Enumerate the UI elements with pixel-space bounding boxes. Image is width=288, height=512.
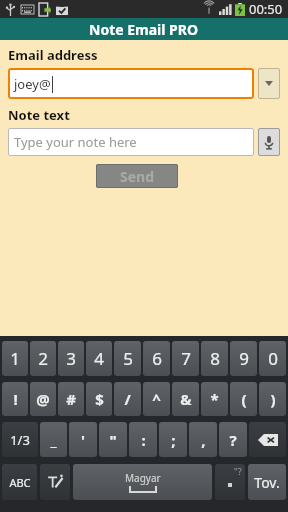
staticText: Send	[120, 167, 155, 186]
staticText: 9	[239, 347, 249, 370]
button[interactable]: !	[2, 382, 28, 416]
staticText: *	[210, 389, 219, 409]
staticText: !	[13, 389, 18, 409]
button[interactable]: 6	[143, 341, 170, 376]
button[interactable]: (	[230, 382, 257, 416]
staticText: 0	[268, 347, 278, 370]
button[interactable]: ?	[219, 422, 247, 457]
staticText: joey@	[14, 75, 51, 93]
staticText: 8	[210, 347, 220, 370]
staticText: ,	[201, 430, 206, 450]
staticText: Tov.	[254, 473, 280, 492]
button[interactable]: Type your note here	[8, 128, 254, 156]
staticText: Note text	[8, 106, 70, 124]
staticText: "	[109, 430, 117, 450]
button[interactable]: #	[58, 382, 84, 416]
staticText: /	[124, 389, 131, 409]
button[interactable]: ^	[143, 382, 170, 416]
button[interactable]: Tov.	[248, 464, 286, 500]
staticText: Note Email PRO	[89, 20, 199, 39]
button[interactable]: 8	[201, 341, 228, 376]
button[interactable]: ,	[189, 422, 217, 457]
staticText: "?	[234, 465, 242, 477]
button[interactable]: "	[99, 422, 127, 457]
button[interactable]: Show suggestions	[258, 68, 280, 99]
button[interactable]: 3	[58, 341, 84, 376]
button[interactable]: ABC	[2, 464, 37, 500]
button[interactable]: Punctuation	[215, 464, 245, 500]
staticText: _	[50, 430, 57, 450]
staticText: Type your note here	[14, 133, 137, 151]
button[interactable]: )	[259, 382, 286, 416]
button[interactable]: Handwriting input	[40, 464, 70, 500]
staticText: &	[180, 389, 192, 409]
staticText: 3	[66, 347, 76, 370]
staticText: 1	[10, 347, 20, 370]
button[interactable]: 2	[30, 341, 56, 376]
staticText: 6	[152, 347, 162, 370]
staticText: 1/3	[10, 431, 30, 449]
button[interactable]: 1	[2, 341, 28, 376]
button[interactable]: @	[30, 382, 56, 416]
button[interactable]: Space	[73, 464, 212, 500]
button[interactable]: 4	[86, 341, 112, 376]
staticText: @	[36, 389, 50, 409]
staticText: $	[95, 389, 104, 409]
staticText: ?	[229, 430, 237, 450]
button[interactable]: 7	[172, 341, 199, 376]
button[interactable]: &	[172, 382, 199, 416]
staticText: 00:50	[249, 0, 283, 18]
staticText: )	[270, 389, 276, 409]
button[interactable]: Backspace	[249, 422, 286, 457]
staticText: #	[66, 389, 76, 409]
staticText: '	[81, 430, 85, 450]
button[interactable]: _	[40, 422, 67, 457]
button[interactable]: 9	[230, 341, 257, 376]
staticText: ABC	[9, 475, 31, 490]
button[interactable]: Voice input	[258, 128, 280, 156]
button[interactable]: 1/3	[2, 422, 38, 457]
button[interactable]: 5	[114, 341, 141, 376]
button[interactable]: :	[129, 422, 157, 457]
staticText: 7	[181, 347, 191, 370]
staticText: Magyar	[125, 471, 161, 485]
staticText: 4	[94, 347, 104, 370]
button[interactable]: joey@	[8, 68, 254, 99]
staticText: Email address	[8, 46, 98, 64]
staticText: 2	[38, 347, 48, 370]
staticText: 5	[123, 347, 133, 370]
button[interactable]: '	[69, 422, 97, 457]
staticText: ;	[171, 430, 176, 450]
button[interactable]: /	[114, 382, 141, 416]
button[interactable]: 0	[259, 341, 286, 376]
button[interactable]: ;	[159, 422, 187, 457]
button[interactable]: $	[86, 382, 112, 416]
staticText: :	[141, 430, 146, 450]
button[interactable]: Send	[96, 164, 178, 188]
button[interactable]: *	[201, 382, 228, 416]
staticText: (	[241, 389, 247, 409]
staticText: ^	[152, 389, 161, 409]
